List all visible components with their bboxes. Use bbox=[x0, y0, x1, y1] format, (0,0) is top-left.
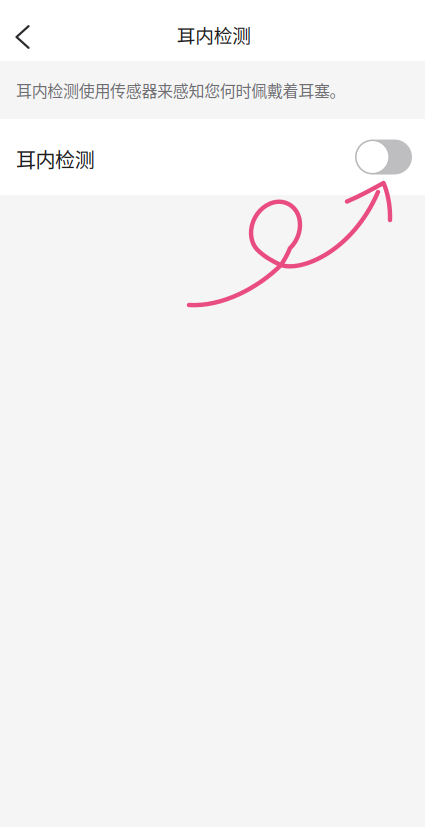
button[interactable]: Back bbox=[0, 3, 44, 58]
button[interactable]: 耳内检测 bbox=[0, 119, 425, 195]
staticText: 耳内检测 bbox=[177, 21, 251, 48]
staticText: 耳内检测 bbox=[16, 144, 95, 173]
staticText: 耳内检测使用传感器来感知您何时佩戴着耳塞。 bbox=[16, 78, 346, 102]
